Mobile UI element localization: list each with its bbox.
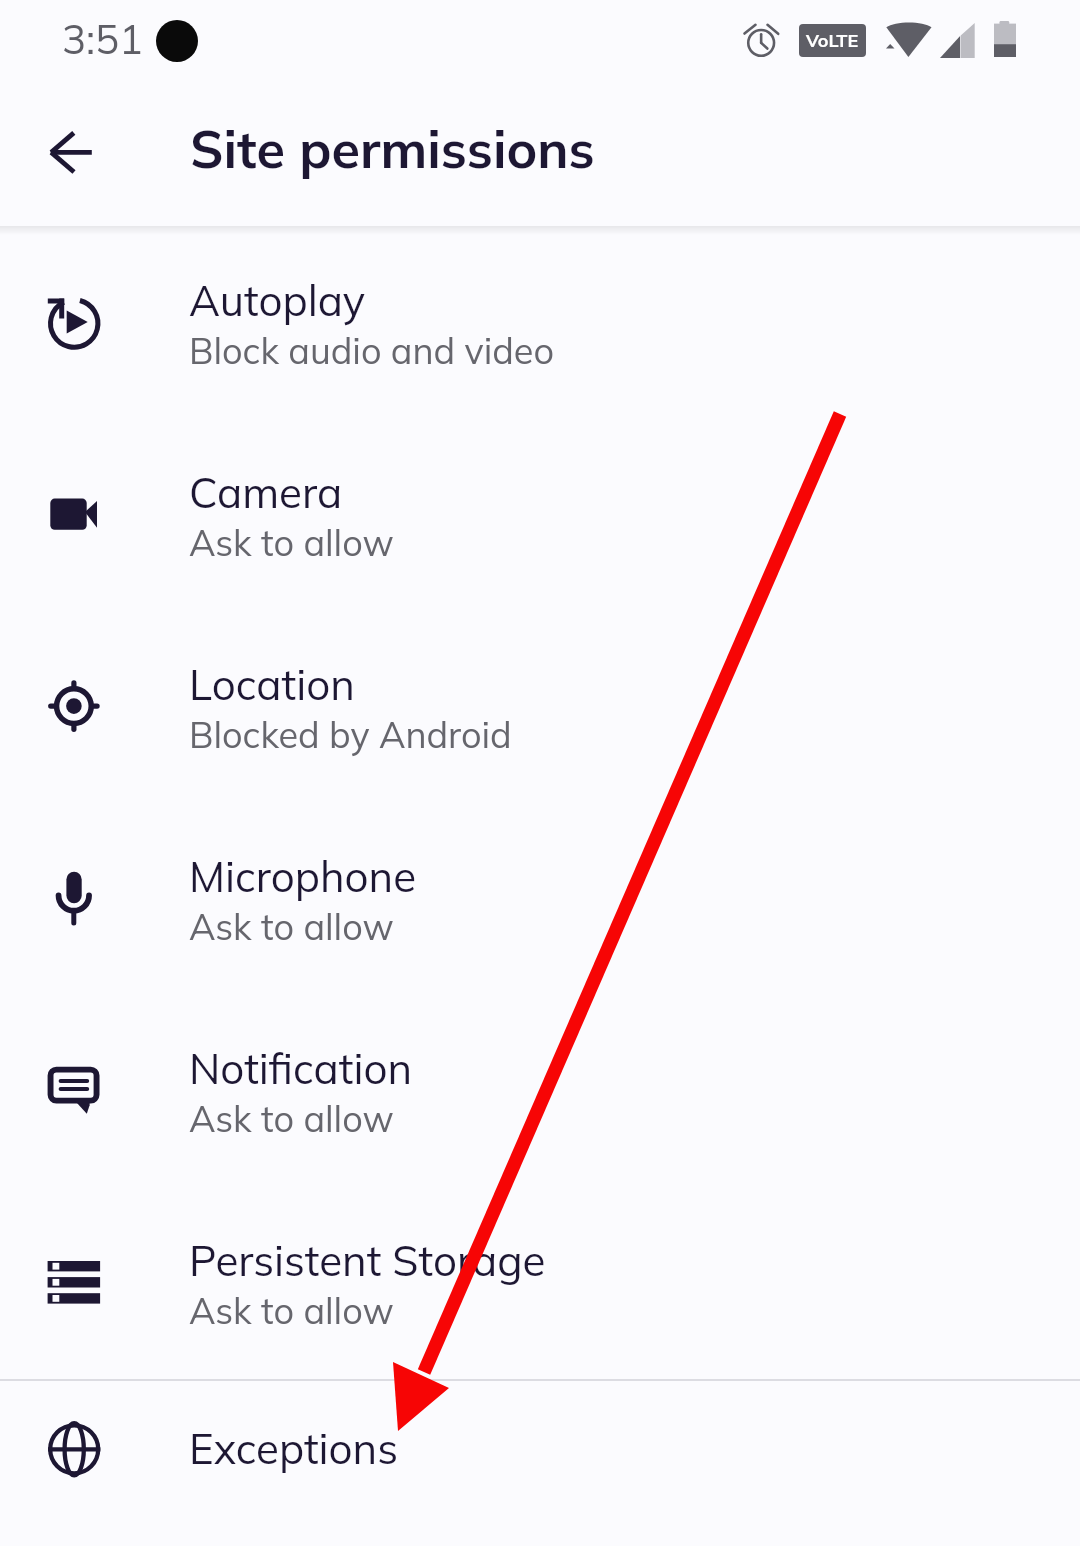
staticText: Microphone <box>189 850 417 903</box>
staticText: 3:51 <box>62 14 144 64</box>
button[interactable]: Persistent Storage <box>0 1187 1080 1379</box>
button[interactable]: Autoplay <box>0 227 1080 419</box>
staticText: VoLTE <box>806 29 859 52</box>
staticText: Location <box>189 658 355 711</box>
button[interactable]: Exceptions <box>0 1353 1080 1545</box>
staticText: Block audio and video <box>189 328 554 373</box>
button[interactable]: Camera <box>0 419 1080 611</box>
staticText: Site permissions <box>190 116 595 181</box>
staticText: Ask to allow <box>189 904 394 949</box>
button[interactable]: Notification <box>0 995 1080 1187</box>
staticText: Ask to allow <box>189 1288 394 1333</box>
button[interactable]: Location <box>0 611 1080 803</box>
button[interactable]: Microphone <box>0 803 1080 995</box>
staticText: Ask to allow <box>189 520 394 565</box>
button[interactable]: Navigate up <box>22 104 120 202</box>
staticText: Exceptions <box>189 1422 399 1475</box>
staticText: Notification <box>189 1042 413 1095</box>
staticText: Autoplay <box>189 274 366 327</box>
staticText: Persistent Storage <box>189 1234 546 1287</box>
staticText: Camera <box>189 466 343 519</box>
staticText: Blocked by Android <box>189 712 512 757</box>
staticText: Ask to allow <box>189 1096 394 1141</box>
